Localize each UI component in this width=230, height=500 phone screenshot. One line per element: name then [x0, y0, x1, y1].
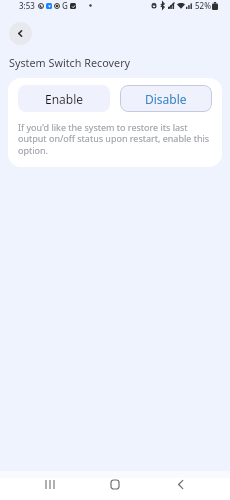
button[interactable]: Recents [32, 471, 68, 498]
staticText: If you'd like the system to restore its … [18, 121, 212, 157]
staticText: 3:53 [19, 0, 35, 11]
staticText: Disable [145, 91, 187, 107]
staticText: 52% [195, 0, 211, 11]
staticText: Enable [45, 91, 84, 107]
button[interactable]: Disable [120, 85, 212, 112]
button[interactable]: Enable [18, 85, 110, 112]
button[interactable]: Back [162, 471, 198, 498]
staticText: G [62, 0, 68, 11]
button[interactable]: Home [97, 471, 133, 498]
button[interactable]: Back [9, 22, 32, 45]
staticText: System Switch Recovery [9, 55, 131, 70]
